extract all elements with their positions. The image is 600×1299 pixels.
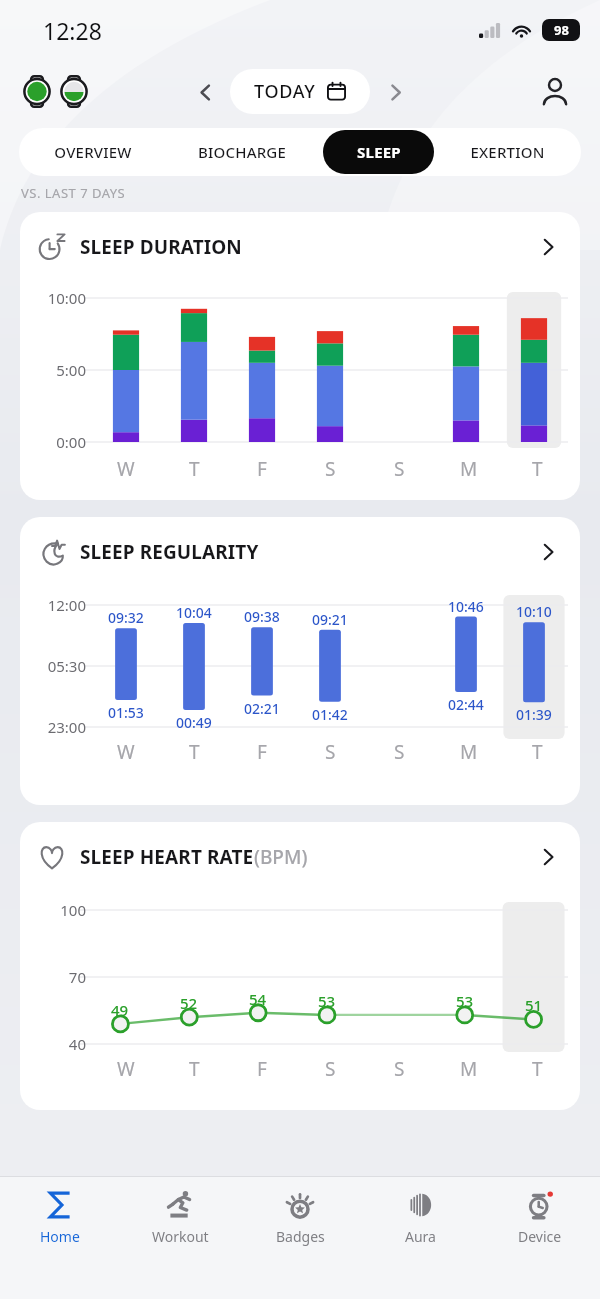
staticText: 10:10 xyxy=(516,602,552,621)
staticText: 01:42 xyxy=(312,705,348,724)
staticText: T xyxy=(189,456,200,482)
staticText: VS. LAST 7 DAYS xyxy=(21,184,126,202)
button[interactable]: SLEEP HEART RATE xyxy=(20,822,580,1110)
button[interactable]: TODAY xyxy=(230,69,370,114)
staticText: Badges xyxy=(276,1227,325,1246)
staticText: M xyxy=(460,739,478,765)
staticText: Workout xyxy=(152,1227,209,1246)
staticText: T xyxy=(189,739,200,765)
staticText: SLEEP HEART RATE xyxy=(80,844,254,870)
button[interactable]: BIOCHARGE xyxy=(165,130,319,174)
staticText: 10:04 xyxy=(176,603,212,622)
staticText: 53 xyxy=(318,991,336,1011)
staticText: W xyxy=(117,739,135,765)
other: Open SLEEP REGULARITY xyxy=(533,537,563,567)
staticText: SLEEP REGULARITY xyxy=(80,539,259,565)
staticText: F xyxy=(257,456,267,482)
staticText: 53 xyxy=(456,991,474,1011)
staticText: S xyxy=(394,1056,405,1082)
staticText: TODAY xyxy=(254,79,316,104)
staticText: 01:53 xyxy=(108,703,144,722)
staticText: T xyxy=(532,1056,543,1082)
staticText: S xyxy=(394,456,405,482)
button[interactable]: Watch xyxy=(23,76,51,107)
staticText: Aura xyxy=(405,1227,436,1246)
staticText: S xyxy=(325,456,336,482)
button[interactable]: SLEEP REGULARITY xyxy=(20,517,580,805)
staticText: SLEEP DURATION xyxy=(80,234,242,260)
staticText: 98 xyxy=(554,21,569,39)
staticText: W xyxy=(117,1056,135,1082)
button[interactable]: Profile xyxy=(532,68,578,114)
other: Open SLEEP DURATION xyxy=(533,232,563,262)
staticText: 54 xyxy=(249,989,267,1009)
staticText: S xyxy=(325,739,336,765)
staticText: S xyxy=(394,739,405,765)
staticText: 10:00 xyxy=(24,288,86,308)
staticText: (BPM) xyxy=(254,844,308,870)
staticText: 00:49 xyxy=(176,713,212,732)
staticText: 100 xyxy=(24,900,86,920)
button[interactable]: EXERTION xyxy=(438,130,576,174)
staticText: 10:46 xyxy=(448,597,484,616)
staticText: 09:21 xyxy=(312,610,348,629)
button[interactable]: Badges xyxy=(240,1177,360,1299)
staticText: 40 xyxy=(24,1034,86,1054)
button[interactable]: OVERVIEW xyxy=(24,130,161,174)
staticText: W xyxy=(117,456,135,482)
staticText: 70 xyxy=(24,967,86,987)
staticText: 09:38 xyxy=(244,607,280,626)
staticText: 23:00 xyxy=(24,717,86,737)
button[interactable]: Next day xyxy=(374,71,416,113)
staticText: T xyxy=(532,739,543,765)
staticText: T xyxy=(532,456,543,482)
staticText: 52 xyxy=(180,993,198,1013)
staticText: EXERTION xyxy=(470,142,545,162)
staticText: BIOCHARGE xyxy=(198,142,286,162)
staticText: 05:30 xyxy=(24,656,86,676)
staticText: M xyxy=(460,456,478,482)
staticText: Home xyxy=(40,1227,80,1246)
staticText: 01:39 xyxy=(516,705,552,724)
button[interactable]: Workout xyxy=(120,1177,240,1299)
staticText: 49 xyxy=(111,1000,129,1020)
staticText: SLEEP xyxy=(357,142,401,162)
button[interactable]: Aura xyxy=(360,1177,480,1299)
button[interactable]: Watch xyxy=(60,76,88,107)
staticText: T xyxy=(189,1056,200,1082)
staticText: 12:00 xyxy=(24,595,86,615)
button[interactable]: Previous day xyxy=(184,71,226,113)
button[interactable]: SLEEP xyxy=(323,130,434,174)
staticText: M xyxy=(460,1056,478,1082)
staticText: 51 xyxy=(525,995,543,1015)
button[interactable]: SLEEP DURATION xyxy=(20,212,580,500)
staticText: F xyxy=(257,1056,267,1082)
staticText: 5:00 xyxy=(24,360,86,380)
staticText: S xyxy=(325,1056,336,1082)
staticText: Device xyxy=(518,1227,562,1246)
button[interactable]: Device xyxy=(480,1177,600,1299)
staticText: F xyxy=(257,739,267,765)
staticText: OVERVIEW xyxy=(54,142,132,162)
other: Open SLEEP HEART RATE xyxy=(533,842,563,872)
staticText: 0:00 xyxy=(24,432,86,452)
staticText: 12:28 xyxy=(43,15,102,46)
staticText: 02:44 xyxy=(448,695,484,714)
staticText: 02:21 xyxy=(244,699,280,718)
staticText: 09:32 xyxy=(108,608,144,627)
button[interactable]: Home xyxy=(0,1177,120,1299)
